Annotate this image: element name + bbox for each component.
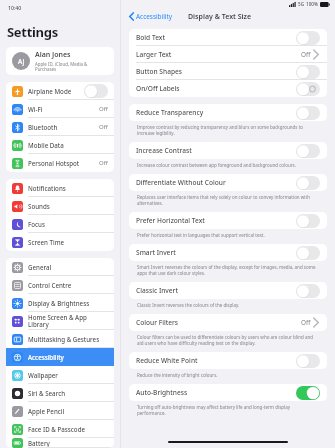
button[interactable]: Larger Text (129, 46, 327, 63)
button[interactable] (296, 65, 320, 79)
button[interactable]: Accessibility (6, 348, 114, 366)
staticText: Reduce the intensity of bright colours. (137, 372, 218, 378)
staticText: Alan Jones (35, 50, 71, 60)
button[interactable]: Multitasking & Gestures (6, 330, 114, 348)
button[interactable]: Personal Hotspot (6, 154, 114, 172)
staticText: Turning off auto-brightness may affect b… (137, 404, 317, 416)
button[interactable]: Reduce White Point (129, 352, 327, 369)
button[interactable] (296, 144, 320, 158)
staticText: Accessibility (136, 12, 173, 21)
staticText: Off (301, 318, 311, 327)
button[interactable]: AJ (6, 47, 114, 75)
staticText: Reduce Transparency (136, 108, 296, 117)
staticText: Siri & Search (28, 389, 108, 397)
button[interactable] (296, 106, 320, 120)
button[interactable] (296, 176, 320, 190)
staticText: Multitasking & Gestures (28, 335, 108, 343)
button[interactable]: Home Screen & App Library (6, 312, 114, 330)
staticText: Apple ID, iCloud, Media & Purchases (35, 61, 108, 73)
button[interactable] (296, 354, 320, 368)
button[interactable]: Wallpaper (6, 366, 114, 384)
staticText: Personal Hotspot (28, 159, 99, 167)
staticText: Classic Invert (136, 286, 296, 295)
staticText: Improve contrast by reducing transparenc… (137, 124, 317, 136)
staticText: Mobile Data (28, 141, 108, 149)
staticText: Focus (28, 220, 108, 228)
button[interactable]: Auto-Brightness (129, 384, 327, 401)
staticText: Off (99, 123, 108, 131)
staticText: Prefer horizontal text in languages that… (137, 232, 265, 238)
staticText: Settings (7, 23, 58, 41)
button[interactable]: Mobile Data (6, 136, 114, 154)
button[interactable] (296, 82, 320, 96)
staticText: 100% (306, 1, 318, 7)
staticText: Wi-Fi (28, 105, 99, 113)
staticText: General (28, 263, 108, 271)
staticText: Off (99, 105, 108, 113)
button[interactable]: Bluetooth (6, 118, 114, 136)
button[interactable]: On/Off Labels (129, 80, 327, 97)
staticText: Classic Invert reverses the colours of t… (137, 302, 240, 308)
staticText: Smart Invert (136, 248, 296, 257)
button[interactable]: Sounds (6, 197, 114, 215)
button[interactable]: Increase Contrast (129, 142, 327, 159)
staticText: Prefer Horizontal Text (136, 216, 296, 225)
button[interactable]: Siri & Search (6, 384, 114, 402)
button[interactable]: Back to Accessibility (129, 12, 173, 21)
staticText: Colour Filters (136, 318, 301, 327)
staticText: Reduce White Point (136, 356, 296, 365)
staticText: Control Centre (28, 281, 108, 289)
staticText: Differentiate Without Colour (136, 178, 296, 187)
staticText: Display & Text Size (188, 12, 252, 22)
button[interactable]: General (6, 258, 114, 276)
button[interactable]: Face ID & Passcode (6, 420, 114, 438)
button[interactable] (84, 84, 108, 98)
button[interactable] (296, 284, 320, 298)
staticText: Face ID & Passcode (28, 425, 108, 433)
staticText: Off (99, 159, 108, 167)
staticText: Battery (28, 439, 108, 447)
staticText: Airplane Mode (28, 87, 84, 95)
button[interactable]: Colour Filters (129, 314, 327, 331)
staticText: 10:40 (8, 4, 22, 11)
button[interactable]: Battery (6, 438, 114, 448)
button[interactable]: Focus (6, 215, 114, 233)
staticText: Increase colour contrast between app for… (137, 162, 296, 168)
staticText: 5G (298, 1, 304, 7)
button[interactable]: Notifications (6, 179, 114, 197)
staticText: Increase Contrast (136, 146, 296, 155)
staticText: Home Screen & App Library (28, 313, 108, 329)
button[interactable]: Reduce Transparency (129, 104, 327, 121)
staticText: Display & Brightness (28, 299, 108, 307)
button[interactable]: Prefer Horizontal Text (129, 212, 327, 229)
staticText: Colour filters can be used to differenti… (137, 334, 317, 346)
staticText: Wallpaper (28, 371, 108, 379)
button[interactable]: Apple Pencil (6, 402, 114, 420)
button[interactable] (296, 246, 320, 260)
button[interactable] (296, 31, 320, 45)
button[interactable] (296, 214, 320, 228)
button[interactable]: Display & Brightness (6, 294, 114, 312)
staticText: AJ (18, 57, 25, 66)
button[interactable]: Control Centre (6, 276, 114, 294)
button[interactable]: Wi-Fi (6, 100, 114, 118)
button[interactable]: Screen Time (6, 233, 114, 251)
staticText: On/Off Labels (136, 84, 296, 93)
button[interactable]: Airplane Mode (6, 82, 114, 100)
button[interactable]: Bold Text (129, 29, 327, 46)
button[interactable]: Classic Invert (129, 282, 327, 299)
staticText: Replaces user interface items that rely … (137, 194, 317, 206)
button[interactable]: Differentiate Without Colour (129, 174, 327, 191)
staticText: Apple Pencil (28, 407, 108, 415)
staticText: Bluetooth (28, 123, 99, 131)
staticText: Screen Time (28, 238, 108, 246)
button[interactable]: Button Shapes (129, 63, 327, 80)
staticText: Off (301, 50, 311, 59)
staticText: Smart Invert reverses the colours of the… (137, 264, 317, 276)
staticText: Accessibility (28, 353, 108, 361)
staticText: Sounds (28, 202, 108, 210)
staticText: Larger Text (136, 50, 301, 59)
staticText: Auto-Brightness (136, 388, 296, 397)
button[interactable]: Smart Invert (129, 244, 327, 261)
button[interactable] (296, 386, 320, 400)
